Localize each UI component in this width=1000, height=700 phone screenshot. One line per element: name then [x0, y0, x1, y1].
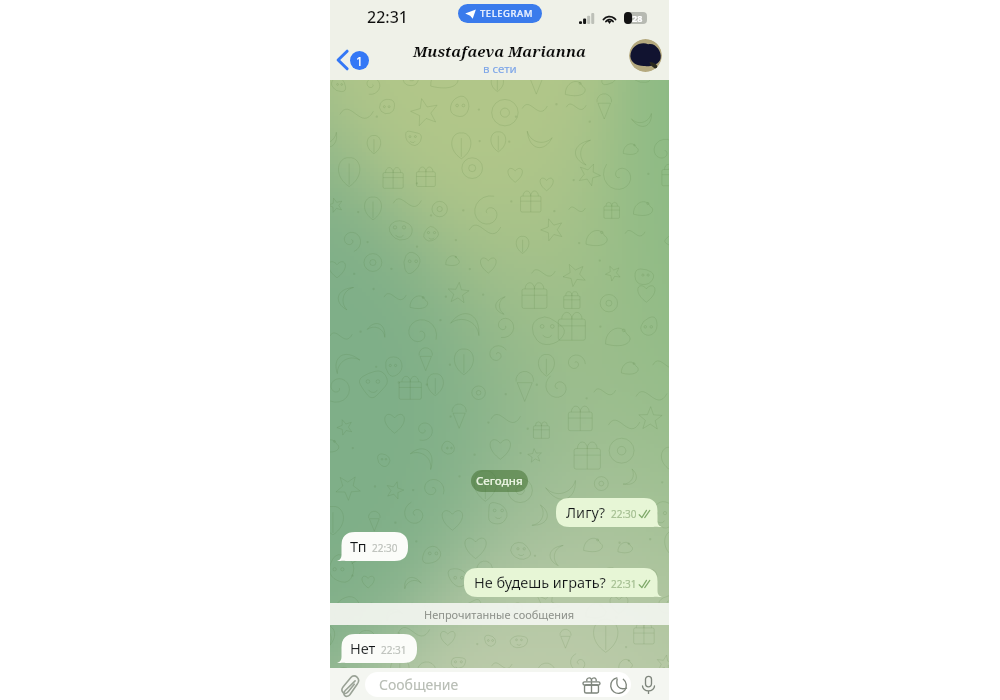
staticText: 22:31 [611, 577, 637, 591]
button[interactable]: Сообщение [365, 672, 631, 697]
staticText: Нет [350, 638, 376, 658]
staticText: Лигу? [566, 502, 606, 522]
staticText: Тп [350, 536, 367, 556]
button[interactable]: Сегодня [471, 470, 528, 492]
button[interactable]: Back [330, 44, 377, 76]
button[interactable]: Attach file [336, 672, 362, 698]
button[interactable]: Нет [336, 634, 417, 663]
staticText: TELEGRAM [480, 7, 533, 20]
staticText: Непрочитанные сообщения [424, 607, 575, 622]
button[interactable]: Profile photo [629, 39, 662, 72]
staticText: 1 [356, 53, 363, 69]
button[interactable]: Лигу? [556, 498, 663, 527]
button[interactable]: Send a gift [579, 673, 603, 697]
button[interactable]: TELEGRAM [458, 4, 542, 23]
staticText: 22:30 [611, 507, 637, 521]
staticText: Сегодня [476, 473, 523, 489]
staticText: 28 [632, 12, 643, 24]
staticText: Не будешь играть? [474, 572, 606, 592]
staticText: в сети [483, 61, 517, 77]
button[interactable]: Record voice message [636, 673, 660, 697]
staticText: 22:30 [372, 541, 398, 555]
button[interactable]: Не будешь играть? [464, 568, 663, 597]
staticText: 22:31 [367, 6, 408, 28]
staticText: Сообщение [379, 675, 459, 694]
button[interactable]: Stickers [606, 673, 630, 697]
button[interactable]: Тп [336, 532, 408, 561]
staticText: Mustafaeva Marianna [413, 41, 586, 61]
staticText: 22:31 [381, 643, 407, 657]
